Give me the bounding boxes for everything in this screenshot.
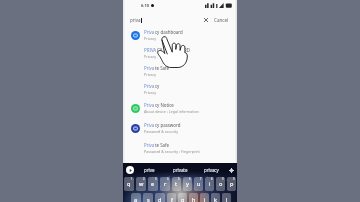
button[interactable]: PRIVA xyxy=(123,44,237,62)
button[interactable]: d xyxy=(155,193,165,202)
staticText: 2 xyxy=(143,177,145,181)
staticText: privacy xyxy=(204,167,219,173)
staticText: w xyxy=(139,180,144,188)
staticText: Privacy xyxy=(144,54,156,59)
staticText: u xyxy=(197,180,201,188)
staticText: e xyxy=(151,180,155,188)
staticText: Privacy xyxy=(144,72,156,77)
staticText: Priva xyxy=(144,102,155,108)
button[interactable]: Keyboard settings xyxy=(227,163,236,177)
button[interactable]: k xyxy=(211,193,220,202)
button[interactable]: Cancel xyxy=(213,16,230,24)
button[interactable]: q xyxy=(124,177,134,191)
button[interactable]: Clear query xyxy=(202,16,210,24)
staticText: p xyxy=(230,180,234,188)
staticText: l xyxy=(226,196,228,202)
button[interactable]: u xyxy=(194,177,203,191)
staticText: r xyxy=(164,180,167,188)
staticText: 5 xyxy=(178,177,180,181)
staticText: Password & security xyxy=(144,129,178,134)
staticText: Priva xyxy=(144,29,155,35)
button[interactable]: Priva xyxy=(123,26,237,44)
button[interactable]: Expand suggestions xyxy=(126,166,134,174)
button[interactable]: h xyxy=(189,193,198,202)
button[interactable]: Priva xyxy=(123,98,237,118)
staticText: 1 xyxy=(131,177,133,181)
button[interactable]: Priva xyxy=(123,62,237,80)
button[interactable]: Priva xyxy=(123,138,237,158)
button[interactable]: Priva xyxy=(123,118,237,138)
staticText: Privacy xyxy=(144,36,156,41)
staticText: i xyxy=(209,180,211,188)
staticText: Password & security › Fingerprint xyxy=(144,149,200,154)
staticText: y xyxy=(186,180,189,188)
staticText: te Safe xyxy=(155,142,170,148)
staticText: Privacy xyxy=(144,90,156,95)
button[interactable]: r xyxy=(160,177,170,191)
staticText: 0 xyxy=(233,177,235,181)
staticText: f xyxy=(171,196,173,202)
staticText: Priva xyxy=(144,83,155,89)
button[interactable]: y xyxy=(183,177,192,191)
button[interactable]: prive xyxy=(134,163,165,177)
button[interactable]: j xyxy=(200,193,209,202)
staticText: About device › Legal information xyxy=(144,109,199,114)
staticText: cy xyxy=(155,83,160,89)
staticText: Cancel xyxy=(214,17,229,23)
button[interactable]: l xyxy=(222,193,231,202)
button[interactable]: t xyxy=(172,177,181,191)
staticText: cy password xyxy=(155,122,181,128)
button[interactable]: g xyxy=(178,193,187,202)
staticText: priva xyxy=(130,17,141,23)
staticText: Priva xyxy=(144,65,155,71)
staticText: Priva xyxy=(144,142,155,148)
staticText: Priva xyxy=(144,122,155,128)
staticText: 6:10 xyxy=(141,3,149,8)
button[interactable]: e xyxy=(148,177,158,191)
staticText: 9 xyxy=(222,177,224,181)
staticText: 3 xyxy=(155,177,157,181)
staticText: cy dashboard xyxy=(155,29,183,35)
staticText: q xyxy=(127,180,131,188)
staticText: j xyxy=(204,196,206,202)
button[interactable]: privacy xyxy=(196,163,227,177)
staticText: private xyxy=(173,167,188,173)
button[interactable]: Priva xyxy=(123,80,237,98)
staticText: s xyxy=(147,196,150,202)
staticText: h xyxy=(192,196,196,202)
button[interactable]: private xyxy=(165,163,196,177)
button[interactable]: a xyxy=(131,193,141,202)
staticText: 4 xyxy=(167,177,169,181)
button[interactable]: o xyxy=(216,177,225,191)
staticText: te Safe xyxy=(155,65,170,71)
button[interactable]: w xyxy=(136,177,146,191)
staticText: a xyxy=(134,196,138,202)
staticText: g xyxy=(181,196,185,202)
staticText: 8 xyxy=(211,177,213,181)
staticText: 6 xyxy=(189,177,191,181)
staticText: d xyxy=(158,196,162,202)
staticText: t xyxy=(175,180,178,188)
staticText: cy Notice xyxy=(155,102,174,108)
button[interactable]: f xyxy=(167,193,176,202)
button[interactable]: p xyxy=(227,177,236,191)
button[interactable]: s xyxy=(143,193,153,202)
staticText: k xyxy=(214,196,217,202)
staticText: PRIVA xyxy=(144,47,157,53)
staticText: prive xyxy=(144,167,155,173)
staticText: o xyxy=(219,180,223,188)
staticText: 7 xyxy=(200,177,202,181)
button[interactable]: i xyxy=(205,177,214,191)
staticText: CY DASHBOARD xyxy=(157,47,190,53)
